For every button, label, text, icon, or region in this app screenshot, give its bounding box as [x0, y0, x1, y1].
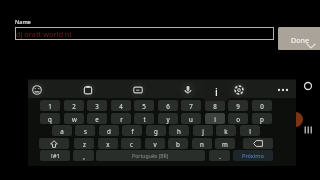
- button[interactable]: o: [228, 113, 248, 124]
- button[interactable]: Home: [303, 81, 313, 91]
- staticText: w: [72, 115, 77, 123]
- staticText: v: [153, 140, 157, 148]
- button[interactable]: 5: [134, 100, 154, 111]
- staticText: l: [249, 127, 251, 135]
- staticText: Português (BR): [132, 152, 169, 159]
- staticText: i: [215, 84, 218, 99]
- staticText: 9: [236, 102, 240, 110]
- staticText: Name: [15, 18, 31, 26]
- button[interactable]: p: [252, 113, 272, 124]
- staticText: i: [214, 115, 216, 123]
- button[interactable]: Próximo: [233, 150, 273, 161]
- button[interactable]: s: [75, 125, 95, 136]
- button[interactable]: 7: [181, 100, 201, 111]
- button[interactable]: z: [74, 138, 94, 149]
- button[interactable]: c: [121, 138, 141, 149]
- button[interactable]: t: [134, 113, 154, 124]
- button[interactable]: More options: [274, 83, 291, 97]
- staticText: u: [189, 115, 193, 123]
- staticText: r: [120, 115, 123, 123]
- button[interactable]: b: [168, 138, 188, 149]
- staticText: z: [83, 140, 86, 148]
- button[interactable]: Stickers: [130, 82, 146, 98]
- staticText: e: [95, 115, 99, 123]
- staticText: 0: [260, 102, 264, 110]
- staticText: k: [224, 127, 228, 135]
- staticText: 7: [189, 102, 193, 110]
- button[interactable]: m: [215, 138, 235, 149]
- staticText: x: [106, 140, 110, 148]
- button[interactable]: 1: [40, 100, 60, 111]
- button[interactable]: a: [52, 125, 72, 136]
- button[interactable]: d: [99, 125, 119, 136]
- button[interactable]: f: [122, 125, 142, 136]
- staticText: d: [107, 127, 111, 135]
- staticText: t: [143, 115, 146, 123]
- button[interactable]: Recent apps: [303, 125, 313, 135]
- staticText: .: [219, 152, 221, 160]
- button[interactable]: g: [146, 125, 166, 136]
- button[interactable]: u: [181, 113, 201, 124]
- staticText: a: [60, 127, 64, 135]
- button[interactable]: q: [40, 113, 60, 124]
- button[interactable]: Emoji: [29, 82, 45, 98]
- button[interactable]: h: [169, 125, 189, 136]
- button[interactable]: Settings: [231, 82, 247, 98]
- staticText: y: [166, 115, 170, 123]
- button[interactable]: .: [209, 150, 230, 161]
- staticText: c: [130, 140, 133, 148]
- button[interactable]: 3: [87, 100, 107, 111]
- staticText: b: [176, 140, 180, 148]
- staticText: p: [260, 115, 264, 123]
- button[interactable]: 6: [158, 100, 178, 111]
- button[interactable]: ,: [73, 150, 94, 161]
- staticText: h: [177, 127, 181, 135]
- staticText: 2: [72, 102, 76, 110]
- staticText: 5: [142, 102, 146, 110]
- button[interactable]: !#1: [40, 150, 70, 161]
- staticText: m: [222, 140, 228, 148]
- staticText: f: [131, 127, 134, 135]
- button[interactable]: 0: [252, 100, 272, 111]
- button[interactable]: v: [145, 138, 165, 149]
- staticText: 6: [166, 102, 170, 110]
- button[interactable]: 2: [64, 100, 84, 111]
- staticText: 1: [48, 102, 52, 110]
- button[interactable]: Shift: [39, 138, 69, 149]
- button[interactable]: 4: [111, 100, 131, 111]
- button[interactable]: Voice input: [180, 82, 196, 98]
- button[interactable]: y: [158, 113, 178, 124]
- staticText: g: [154, 127, 158, 135]
- staticText: 4: [119, 102, 123, 110]
- button[interactable]: w: [64, 113, 84, 124]
- button[interactable]: Português (BR): [96, 150, 205, 161]
- button[interactable]: j: [193, 125, 213, 136]
- button[interactable]: 9: [228, 100, 248, 111]
- button[interactable]: Backspace: [243, 138, 273, 149]
- staticText: 8: [213, 102, 217, 110]
- staticText: Done: [291, 35, 310, 45]
- staticText: n: [200, 140, 204, 148]
- button[interactable]: e: [87, 113, 107, 124]
- button[interactable]: k: [216, 125, 236, 136]
- staticText: 3: [95, 102, 99, 110]
- staticText: j: [202, 127, 204, 135]
- button[interactable]: 8: [205, 100, 225, 111]
- button[interactable]: Done: [278, 27, 320, 50]
- button[interactable]: i: [205, 113, 225, 124]
- button[interactable]: l: [240, 125, 260, 136]
- button[interactable]: Clipboard: [80, 82, 96, 98]
- staticText: q: [48, 115, 52, 123]
- button[interactable]: r: [111, 113, 131, 124]
- staticText: s: [84, 127, 87, 135]
- staticText: !#1: [51, 152, 60, 160]
- staticText: Próximo: [242, 152, 264, 160]
- button[interactable]: x: [98, 138, 118, 149]
- button[interactable]: dj oratt world nl: [15, 27, 274, 40]
- staticText: dj oratt world nl: [16, 29, 72, 39]
- button[interactable]: n: [192, 138, 212, 149]
- staticText: o: [236, 115, 240, 123]
- staticText: ,: [83, 152, 85, 160]
